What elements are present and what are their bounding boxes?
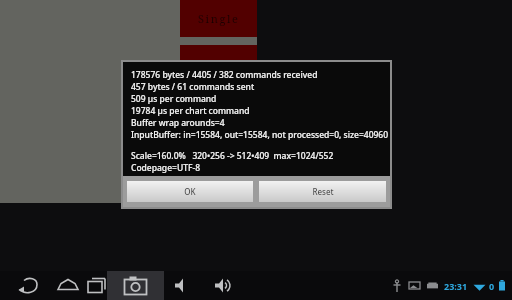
staticText: 19784 µs per chart command xyxy=(131,105,250,117)
staticText: OK xyxy=(184,186,196,197)
staticText: Buffer wrap arounds=4 xyxy=(131,117,225,129)
button[interactable]: Reset xyxy=(259,181,386,202)
button[interactable]: Screenshot xyxy=(107,271,164,300)
button[interactable]: OK xyxy=(127,181,253,202)
button[interactable]: Recent apps xyxy=(80,271,114,300)
staticText: 509 µs per command xyxy=(131,93,217,105)
staticText: 457 bytes / 61 commands sent xyxy=(131,81,255,93)
staticText: 178576 bytes / 4405 / 382 commands recei… xyxy=(131,69,318,81)
staticText: 0 xyxy=(489,280,495,292)
button[interactable]: Back xyxy=(8,271,48,300)
staticText: Scale=160.0% 320•256 -> 512•409 max=1024… xyxy=(131,150,334,162)
button[interactable]: Home xyxy=(48,271,88,300)
button[interactable]: Volume down xyxy=(164,271,204,300)
staticText: Codepage=UTF-8 xyxy=(131,162,201,174)
staticText: 23:31 xyxy=(444,280,468,292)
staticText: InputBuffer: in=15584, out=15584, not pr… xyxy=(131,129,389,141)
staticText: Single xyxy=(198,11,240,26)
staticText: Reset xyxy=(312,186,334,197)
button[interactable]: Volume up xyxy=(204,271,244,300)
